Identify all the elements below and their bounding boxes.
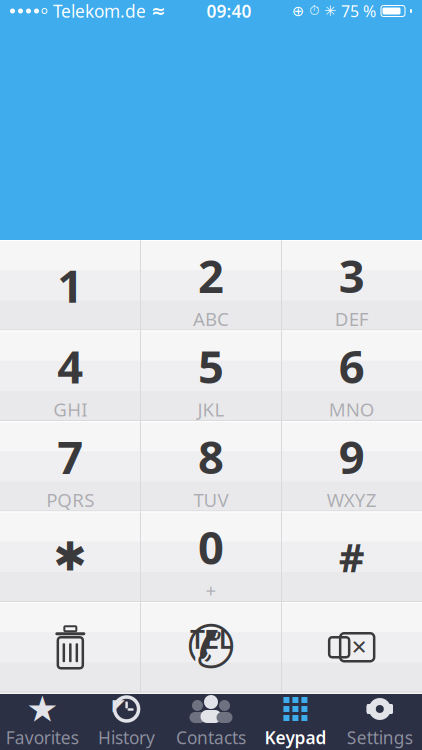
staticText: 0 — [198, 517, 224, 577]
staticText: Contacts — [176, 726, 246, 749]
button[interactable]: ★ — [0, 689, 84, 750]
button[interactable]: Clear — [0, 602, 141, 692]
staticText: ⊕ — [292, 3, 304, 19]
staticText: 9 — [339, 426, 365, 486]
staticText: WXYZ — [327, 487, 377, 512]
button[interactable]: 8 — [141, 421, 281, 511]
staticText: ℡ — [189, 612, 232, 683]
staticText: 1 — [57, 255, 83, 315]
staticText: ≈ — [151, 1, 166, 21]
button[interactable]: 0 — [141, 511, 281, 602]
staticText: JKL — [197, 397, 224, 422]
staticText: 8 — [198, 426, 224, 486]
staticText: MNO — [329, 397, 375, 422]
staticText: 4 — [57, 336, 83, 396]
staticText: ✆ — [186, 614, 235, 681]
staticText: PQRS — [46, 487, 94, 512]
staticText: TUV — [193, 487, 228, 512]
button[interactable]: 5 — [141, 330, 281, 421]
staticText: ⏱ — [309, 4, 319, 17]
button[interactable]: ◤ — [84, 689, 169, 750]
staticText: + — [205, 578, 216, 603]
button[interactable]: Keypad — [253, 689, 338, 750]
staticText: 6 — [339, 336, 365, 396]
staticText: ✱ — [53, 534, 87, 579]
staticText: Settings — [347, 726, 413, 749]
staticText: 3 — [339, 245, 365, 305]
staticText: 2 — [198, 245, 224, 305]
staticText: 75 % — [341, 0, 376, 22]
button[interactable]: 9 — [281, 421, 422, 511]
button[interactable]: Contacts — [169, 689, 253, 750]
button[interactable]: 2 — [141, 240, 281, 330]
staticText: ✳ — [324, 3, 336, 19]
staticText: Favorites — [6, 726, 79, 749]
staticText: History — [98, 726, 155, 749]
staticText: ◤ — [113, 696, 125, 714]
button[interactable]: 3 — [281, 240, 422, 330]
staticText: 7 — [57, 426, 83, 486]
staticText: # — [339, 530, 365, 583]
button[interactable]: Call — [141, 602, 281, 692]
button[interactable]: # — [281, 511, 422, 602]
staticText: 5 — [198, 336, 224, 396]
staticText: DEF — [335, 306, 369, 331]
button[interactable]: 6 — [281, 330, 422, 421]
staticText: Keypad — [264, 726, 326, 749]
staticText: ★ — [26, 689, 58, 729]
button[interactable]: Delete — [281, 602, 422, 692]
button[interactable]: 4 — [0, 330, 141, 421]
staticText: ✕ — [351, 636, 368, 659]
button[interactable]: ✱ — [0, 511, 141, 602]
staticText: Telekom.de — [53, 0, 146, 22]
staticText: 09:40 — [206, 0, 251, 22]
staticText: GHI — [53, 397, 87, 422]
button[interactable]: 1 — [0, 240, 141, 330]
button[interactable]: 7 — [0, 421, 141, 511]
staticText: ABC — [193, 306, 229, 331]
button[interactable]: Settings — [338, 689, 422, 750]
